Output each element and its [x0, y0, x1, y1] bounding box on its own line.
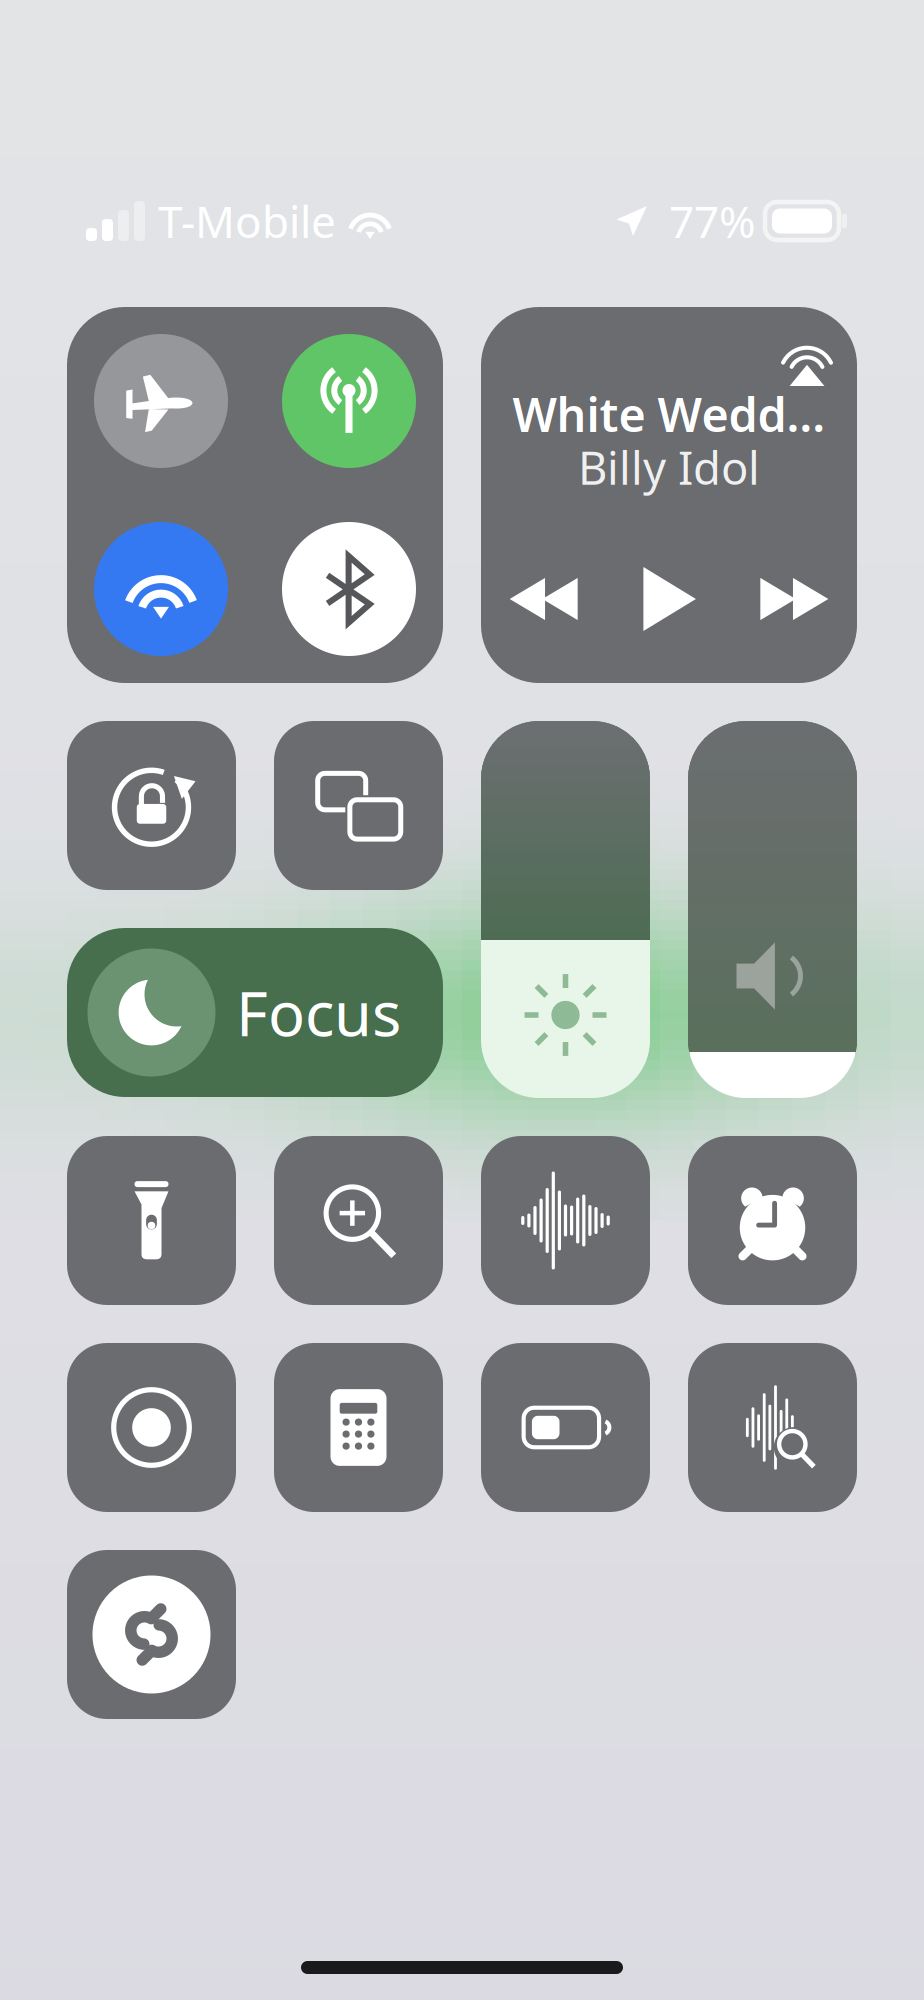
- staticText: 77%: [669, 192, 756, 250]
- button[interactable]: Brightness: [481, 721, 650, 1098]
- button[interactable]: Flashlight: [67, 1136, 236, 1305]
- staticText: T-Mobile: [158, 192, 336, 250]
- button[interactable]: Shazam: [67, 1550, 236, 1719]
- button[interactable]: Magnifier: [274, 1136, 443, 1305]
- button[interactable]: Alarm: [688, 1136, 857, 1305]
- button[interactable]: Low Power Mode: [481, 1343, 650, 1512]
- button[interactable]: Rotation Lock: [67, 721, 236, 890]
- button[interactable]: Hearing: [481, 1136, 650, 1305]
- button[interactable]: Calculator: [274, 1343, 443, 1512]
- button[interactable]: Bluetooth: [255, 495, 443, 683]
- staticText: Billy Idol: [578, 437, 760, 497]
- button[interactable]: Focus: [67, 928, 443, 1097]
- staticText: White Wedd…: [512, 383, 825, 445]
- button[interactable]: AirPlay: [765, 315, 849, 399]
- button[interactable]: Volume: [688, 721, 857, 1098]
- button[interactable]: Screen Mirroring: [274, 721, 443, 890]
- button[interactable]: Screen Recording: [67, 1343, 236, 1512]
- button[interactable]: Play: [606, 557, 732, 641]
- staticText: Focus: [236, 972, 401, 1053]
- button[interactable]: Wi-Fi: [67, 495, 255, 683]
- button[interactable]: Cellular Data: [255, 307, 443, 495]
- button[interactable]: Next Track: [732, 557, 857, 641]
- button[interactable]: Sound Recognition: [688, 1343, 857, 1512]
- button[interactable]: Previous Track: [481, 557, 606, 641]
- button[interactable]: Airplane Mode: [67, 307, 255, 495]
